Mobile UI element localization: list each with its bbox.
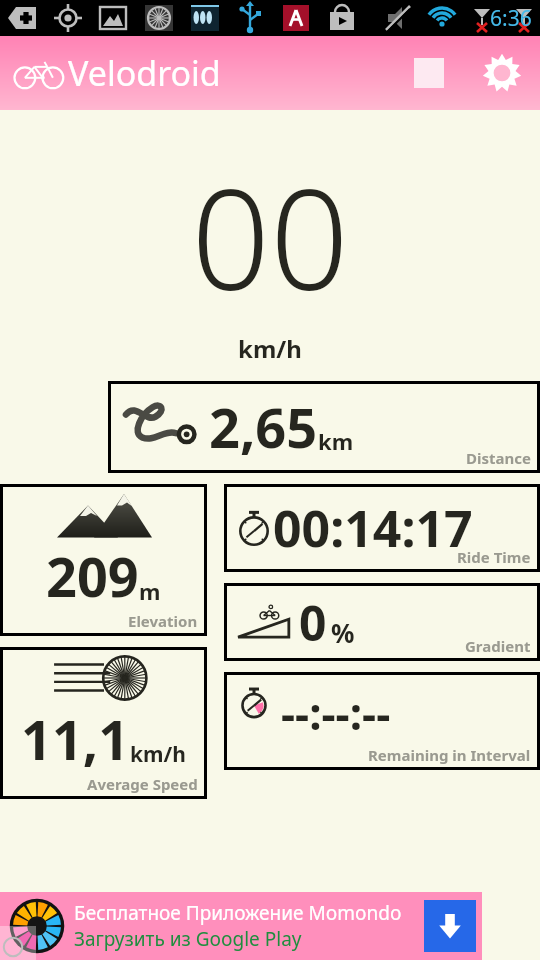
staticText: 11,1 [21,702,130,776]
staticText: Загрузить из Google Play [74,926,302,952]
staticText: 0 [299,590,327,655]
staticText: 209 [46,539,139,613]
staticText: 00 [191,142,349,330]
button[interactable]: 11,1 [3,650,204,796]
staticText: Remaining in Interval [368,745,531,765]
button[interactable]: 00:14:17 [227,487,537,569]
staticText: --:--:-- [281,683,391,743]
button[interactable]: Stop recording [402,46,456,100]
staticText: Бесплатное Приложение Momondo [74,900,402,926]
staticText: km/h [238,332,302,365]
button[interactable]: 209 [3,487,204,633]
staticText: 2,65 [209,390,318,464]
button[interactable]: Бесплатное Приложение Momondo [0,892,482,960]
staticText: Average Speed [87,774,198,794]
staticText: Distance [466,448,531,468]
staticText: 00:14:17 [273,494,473,562]
button[interactable]: --:--:-- [227,675,537,767]
button[interactable]: 0 [227,586,537,658]
staticText: km/h [130,740,186,769]
button[interactable]: 00 [0,142,540,365]
button[interactable]: Settings [474,45,530,101]
staticText: % [331,615,355,650]
button[interactable]: Download [424,900,476,952]
staticText: Elevation [128,611,198,631]
staticText: m [139,576,161,606]
staticText: Ride Time [457,547,531,567]
staticText: Velodroid [68,50,221,96]
button[interactable]: 2,65 [111,384,537,470]
staticText: 6:36 [490,4,532,33]
staticText: km [318,426,354,456]
staticText: Gradient [465,636,531,656]
